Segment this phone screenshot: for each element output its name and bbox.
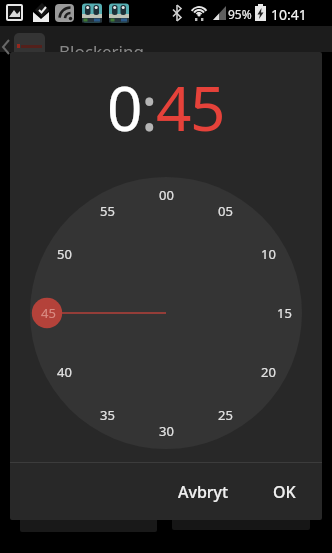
button[interactable]: 40: [50, 363, 78, 381]
staticText: 05: [218, 202, 233, 220]
button[interactable]: 15: [270, 304, 298, 322]
button[interactable]: 55: [93, 202, 121, 220]
staticText: 10:41: [271, 5, 307, 24]
staticText: Blockering: [59, 40, 144, 63]
button[interactable]: 30: [152, 422, 180, 440]
staticText: 35: [100, 406, 115, 424]
staticText: 00: [159, 186, 174, 204]
button[interactable]: 00: [152, 186, 180, 204]
button[interactable]: 05: [211, 202, 239, 220]
button[interactable]: Avbryt: [160, 464, 246, 520]
staticText: Avbryt: [178, 481, 229, 503]
button[interactable]: 20: [254, 363, 282, 381]
staticText: 55: [100, 202, 115, 220]
staticText: 30: [159, 422, 174, 440]
staticText: 50: [57, 245, 72, 263]
staticText: 95%: [228, 6, 252, 22]
button[interactable]: 35: [93, 406, 121, 424]
staticText: 15: [277, 304, 292, 322]
staticText: 40: [57, 363, 72, 381]
button[interactable]: [1, 40, 11, 54]
button[interactable]: OK: [246, 464, 322, 520]
button[interactable]: 45: [34, 304, 62, 322]
staticText: OK: [273, 481, 296, 503]
button[interactable]: 25: [211, 406, 239, 424]
button[interactable]: 10: [254, 245, 282, 263]
staticText: 20: [261, 363, 276, 381]
staticText: 25: [218, 406, 233, 424]
staticText: 0:45: [107, 65, 225, 149]
button[interactable]: 50: [50, 245, 78, 263]
staticText: 10: [261, 245, 276, 263]
staticText: 45: [41, 304, 56, 322]
